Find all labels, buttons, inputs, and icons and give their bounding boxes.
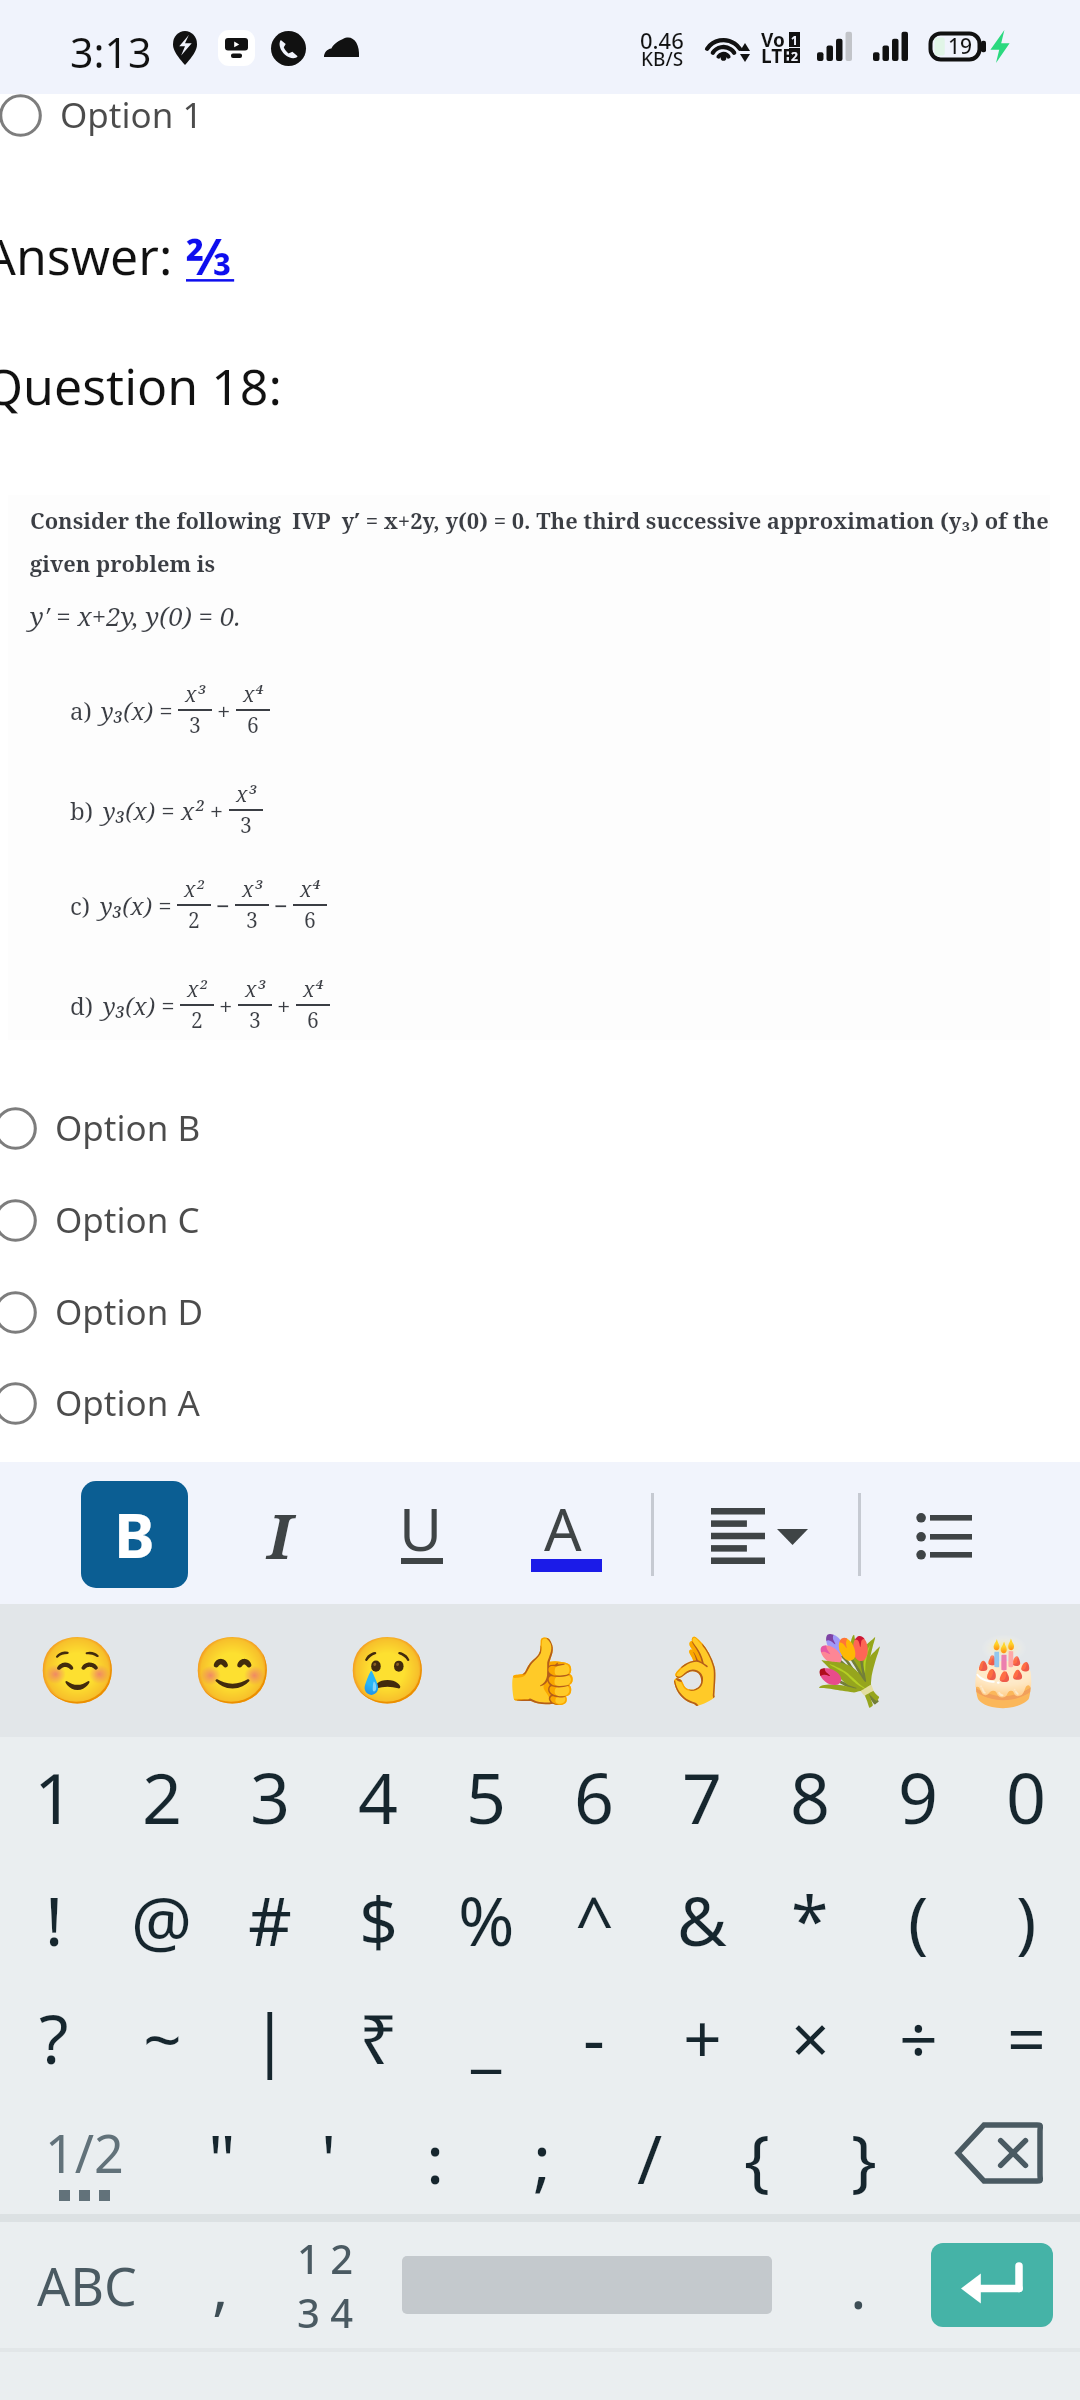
staticText: + xyxy=(277,989,291,1022)
button[interactable]: : xyxy=(382,2091,489,2214)
button[interactable]: @ xyxy=(108,1855,216,1973)
staticText: Option B xyxy=(55,1104,201,1152)
staticText: y₃(x) = xyxy=(103,989,175,1022)
button[interactable]: 1 xyxy=(0,1737,108,1855)
button[interactable]: / xyxy=(596,2091,703,2214)
button[interactable]: Switch page xyxy=(0,2091,168,2214)
button[interactable]: , xyxy=(174,2222,266,2348)
button[interactable]: + xyxy=(648,1973,756,2091)
button[interactable]: ☺️ xyxy=(0,1604,155,1737)
staticText: 4 xyxy=(358,1749,399,1844)
button[interactable]: × xyxy=(756,1973,864,2091)
staticText: ⅔ xyxy=(186,222,235,290)
staticText: } xyxy=(851,2111,877,2204)
button[interactable]: 💐 xyxy=(772,1604,926,1737)
staticText: 3 xyxy=(246,906,258,935)
button[interactable]: 7 xyxy=(648,1737,756,1855)
button[interactable]: ? xyxy=(0,1973,108,2091)
button[interactable]: Option B xyxy=(0,1093,1074,1163)
button[interactable]: ( xyxy=(864,1855,972,1973)
button[interactable]: } xyxy=(810,2091,917,2214)
button[interactable]: " xyxy=(168,2091,275,2214)
button[interactable]: ~ xyxy=(108,1973,216,2091)
button[interactable]: A xyxy=(513,1481,620,1588)
staticText: x³ xyxy=(245,975,265,1004)
button[interactable]: Option 1 xyxy=(0,80,1079,150)
staticText: 2 xyxy=(188,906,200,935)
staticText: x² xyxy=(187,975,207,1004)
staticText: Vo xyxy=(761,27,785,53)
button[interactable]: Option A xyxy=(0,1368,1074,1438)
staticText: LTE xyxy=(761,43,793,69)
button[interactable]: Option C xyxy=(0,1185,1074,1255)
button[interactable]: - xyxy=(540,1973,648,2091)
button[interactable]: ; xyxy=(489,2091,596,2214)
button[interactable]: Space xyxy=(384,2222,790,2348)
staticText: 1 2 xyxy=(297,2231,354,2285)
button[interactable]: * xyxy=(756,1855,864,1973)
staticText: x⁴ xyxy=(243,680,263,709)
staticText: 2 xyxy=(142,1749,183,1844)
staticText: " xyxy=(208,2111,236,2204)
button[interactable]: # xyxy=(216,1855,324,1973)
staticText: y₃(x) = xyxy=(101,694,173,727)
staticText: 2 xyxy=(791,48,798,63)
button[interactable]: Bulleted list xyxy=(896,1482,996,1586)
button[interactable]: ABC xyxy=(0,2222,174,2348)
staticText: ₹ xyxy=(359,1991,398,2084)
button[interactable]: Option D xyxy=(0,1277,1074,1347)
button[interactable]: I xyxy=(226,1481,333,1588)
button[interactable]: ! xyxy=(0,1855,108,1973)
button[interactable]: ' xyxy=(275,2091,382,2214)
button[interactable]: 5 xyxy=(432,1737,540,1855)
staticText: ☺️ xyxy=(37,1633,118,1709)
button[interactable]: ^ xyxy=(540,1855,648,1973)
button[interactable]: { xyxy=(703,2091,810,2214)
button[interactable]: & xyxy=(648,1855,756,1973)
button[interactable]: 0 xyxy=(972,1737,1080,1855)
button[interactable]: Numbers xyxy=(266,2222,384,2348)
staticText: B xyxy=(114,1493,155,1576)
staticText: 3 4 xyxy=(297,2285,354,2339)
button[interactable]: 4 xyxy=(324,1737,432,1855)
staticText: 19 xyxy=(948,32,973,61)
staticText: y′ = x+2y, y(0) = 0. xyxy=(30,598,241,633)
button[interactable]: = xyxy=(972,1973,1080,2091)
staticText: 2 xyxy=(191,1006,203,1035)
button[interactable]: 😢 xyxy=(310,1604,464,1737)
staticText: 5 xyxy=(466,1749,507,1844)
button[interactable]: _ xyxy=(432,1973,540,2091)
button[interactable]: Enter xyxy=(931,2243,1053,2327)
staticText: = xyxy=(1007,1991,1046,2084)
staticText: c) xyxy=(70,889,91,922)
button[interactable]: 8 xyxy=(756,1737,864,1855)
button[interactable]: ÷ xyxy=(864,1973,972,2091)
button[interactable]: ) xyxy=(972,1855,1080,1973)
staticText: ( xyxy=(908,1873,929,1966)
staticText: + xyxy=(217,694,231,727)
button[interactable]: 😊 xyxy=(155,1604,310,1737)
button[interactable]: . xyxy=(790,2222,926,2348)
staticText: a) xyxy=(70,694,92,727)
button[interactable]: ₹ xyxy=(324,1973,432,2091)
staticText: ~ xyxy=(143,1991,182,2084)
button[interactable]: 👌 xyxy=(618,1604,772,1737)
staticText: 7 xyxy=(682,1749,723,1844)
button[interactable]: | xyxy=(216,1973,324,2091)
button[interactable]: 👍 xyxy=(464,1604,618,1737)
button[interactable]: 2 xyxy=(108,1737,216,1855)
button[interactable]: Backspace xyxy=(917,2091,1080,2214)
button[interactable]: 🎂 xyxy=(926,1604,1080,1737)
staticText: 9 xyxy=(898,1749,939,1844)
button[interactable]: B xyxy=(81,1481,188,1588)
button[interactable]: 9 xyxy=(864,1737,972,1855)
button[interactable]: 6 xyxy=(540,1737,648,1855)
button[interactable]: U xyxy=(369,1481,476,1588)
button[interactable]: 3 xyxy=(216,1737,324,1855)
button[interactable]: % xyxy=(432,1855,540,1973)
button[interactable]: Paragraph alignment xyxy=(690,1482,825,1586)
staticText: # xyxy=(248,1873,292,1966)
staticText: + xyxy=(219,989,233,1022)
staticText: x² xyxy=(184,875,204,904)
button[interactable]: $ xyxy=(324,1855,432,1973)
